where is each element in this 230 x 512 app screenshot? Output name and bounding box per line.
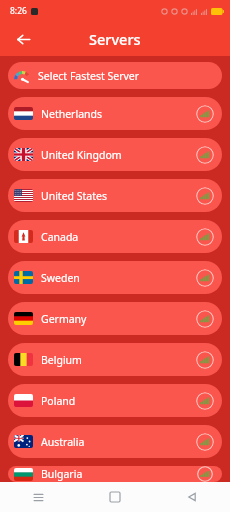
- staticText: Bulgaria: [41, 467, 83, 481]
- staticText: Canada: [41, 230, 79, 244]
- button[interactable]: United States: [8, 179, 222, 212]
- button[interactable]: Signal strength: [196, 351, 214, 369]
- staticText: United Kingdom: [41, 148, 122, 162]
- staticText: Germany: [41, 312, 87, 326]
- button[interactable]: Back: [153, 482, 230, 512]
- staticText: Servers: [89, 29, 141, 49]
- button[interactable]: Australia: [8, 425, 222, 458]
- button[interactable]: Canada: [8, 220, 222, 253]
- button[interactable]: Signal strength: [196, 269, 214, 287]
- button[interactable]: Signal strength: [196, 466, 214, 482]
- staticText: Belgium: [41, 353, 82, 367]
- button[interactable]: Sweden: [8, 261, 222, 294]
- staticText: 8:26: [10, 5, 27, 17]
- button[interactable]: Select Fastest Server: [8, 62, 222, 89]
- button[interactable]: Germany: [8, 302, 222, 335]
- button[interactable]: Poland: [8, 384, 222, 417]
- button[interactable]: Signal strength: [196, 187, 214, 205]
- button[interactable]: Home: [76, 482, 153, 512]
- button[interactable]: Signal strength: [196, 310, 214, 328]
- staticText: United States: [41, 189, 107, 203]
- button[interactable]: Bulgaria: [8, 466, 222, 482]
- staticText: Select Fastest Server: [38, 69, 140, 83]
- button[interactable]: Netherlands: [8, 97, 222, 130]
- button[interactable]: Signal strength: [196, 392, 214, 410]
- button[interactable]: Signal strength: [196, 146, 214, 164]
- button[interactable]: Recent apps: [0, 482, 76, 512]
- staticText: Australia: [41, 435, 85, 449]
- staticText: Poland: [41, 394, 76, 408]
- button[interactable]: Signal strength: [196, 433, 214, 451]
- staticText: Sweden: [41, 271, 80, 285]
- button[interactable]: Belgium: [8, 343, 222, 376]
- button[interactable]: Back: [8, 24, 38, 54]
- staticText: Netherlands: [41, 107, 103, 121]
- button[interactable]: Signal strength: [196, 105, 214, 123]
- button[interactable]: United Kingdom: [8, 138, 222, 171]
- button[interactable]: Signal strength: [196, 228, 214, 246]
